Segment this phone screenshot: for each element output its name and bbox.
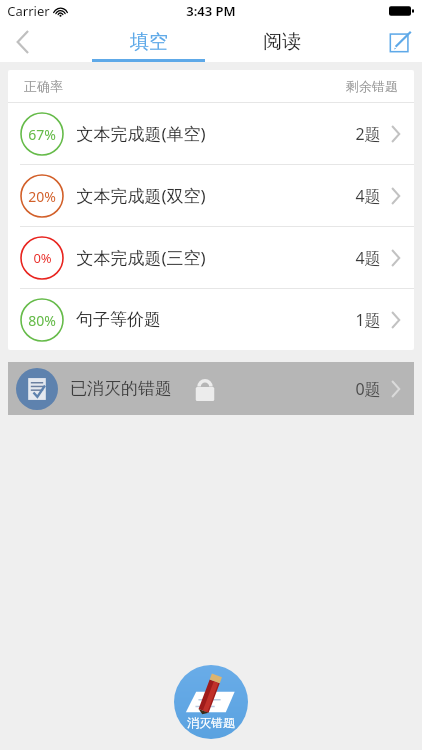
button[interactable]: 20%	[8, 165, 414, 227]
staticText: 剩余错题	[346, 78, 398, 94]
staticText: 文本完成题(三空)	[76, 246, 206, 269]
staticText: 正确率	[24, 78, 63, 94]
staticText: 填空	[130, 30, 168, 54]
staticText: 80%	[28, 311, 56, 330]
staticText: 文本完成题(双空)	[76, 184, 206, 207]
staticText: 1题	[355, 309, 381, 331]
button[interactable]: 填空	[92, 22, 205, 62]
button[interactable]: 消灭错题	[174, 665, 248, 739]
staticText: 已消灭的错题	[70, 378, 172, 399]
staticText: 阅读	[263, 30, 301, 54]
button[interactable]: Back	[0, 22, 46, 62]
staticText: 文本完成题(单空)	[76, 122, 206, 145]
button[interactable]: 阅读	[225, 22, 338, 62]
button[interactable]: 已消灭的错题	[8, 362, 414, 415]
staticText: 20%	[28, 187, 56, 206]
button[interactable]: 0%	[8, 227, 414, 289]
staticText: 0%	[33, 249, 52, 267]
button[interactable]: 67%	[8, 103, 414, 165]
staticText: 消灭错题	[187, 715, 235, 730]
staticText: 0题	[355, 378, 381, 400]
staticText: 4题	[355, 247, 381, 269]
staticText: Carrier	[7, 2, 50, 20]
staticText: 67%	[28, 125, 56, 144]
staticText: 3:43 PM	[186, 2, 236, 20]
staticText: 4题	[355, 185, 381, 207]
staticText: 句子等价题	[76, 309, 161, 330]
staticText: 2题	[355, 123, 381, 145]
button[interactable]: Edit	[378, 22, 422, 62]
button[interactable]: 80%	[8, 289, 414, 350]
